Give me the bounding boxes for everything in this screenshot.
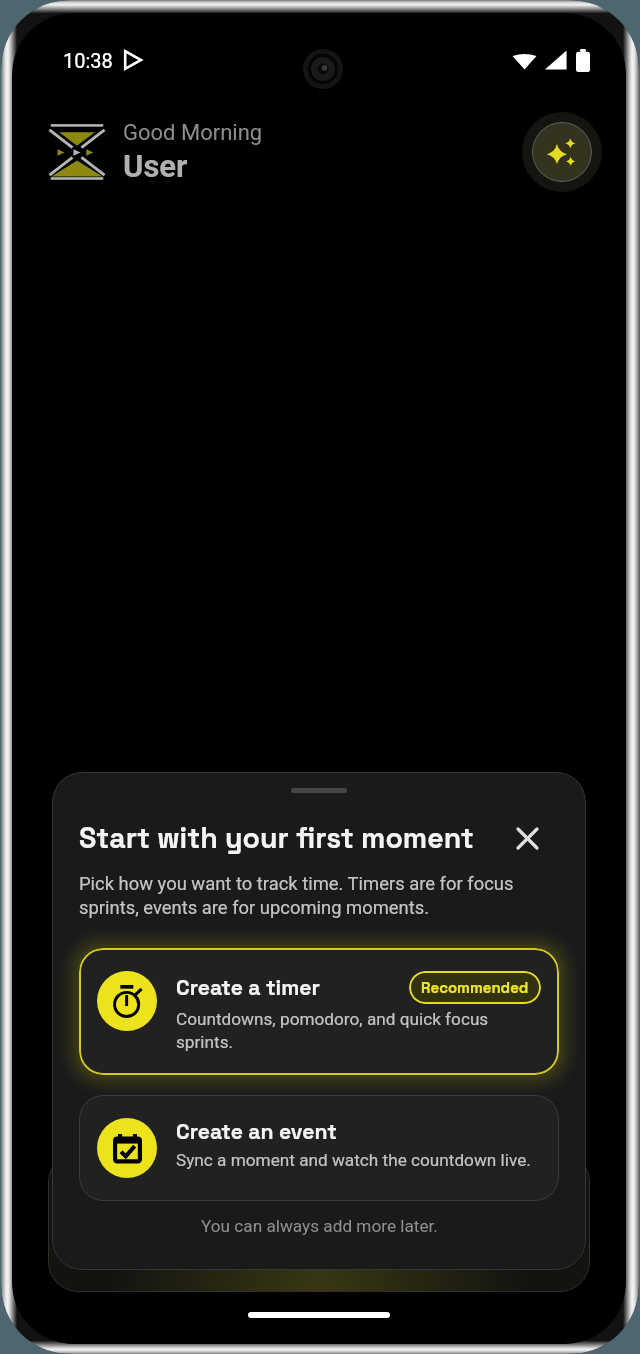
staticText: You can always add more later. [201, 1216, 438, 1236]
staticText: Pick how you want to track time. Timers … [79, 873, 559, 918]
staticText: Create a timer [176, 974, 320, 1001]
staticText: User [123, 148, 188, 184]
staticText: 10:38 [63, 49, 113, 72]
staticText: Sync a moment and watch the countdown li… [176, 1150, 531, 1170]
staticText: Recommended [421, 978, 529, 997]
staticText: Start with your first moment [79, 820, 474, 856]
staticText: Create an event [176, 1118, 337, 1145]
button[interactable]: Create an event [79, 1095, 559, 1201]
button[interactable]: Close [509, 820, 545, 856]
button[interactable]: AI suggestions [532, 122, 592, 182]
staticText: Countdowns, pomodoro, and quick focus sp… [176, 1009, 541, 1052]
staticText: Good Morning [123, 120, 263, 146]
button[interactable]: Create a timer [79, 948, 559, 1075]
